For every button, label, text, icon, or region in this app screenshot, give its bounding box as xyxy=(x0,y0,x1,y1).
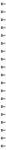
button[interactable]: Siri & Search xyxy=(0,79,6,87)
staticText: Home Screen xyxy=(3,66,4,68)
button[interactable]: Mail xyxy=(0,134,6,142)
button[interactable]: Notifications xyxy=(0,24,6,32)
staticText: Passwords xyxy=(3,129,4,131)
button[interactable]: Face ID & Passcode xyxy=(0,87,6,95)
staticText: Contacts xyxy=(3,145,4,147)
button[interactable]: Wallpaper xyxy=(0,71,6,79)
button[interactable]: Wallet & Apple Pay xyxy=(0,118,6,126)
staticText: Accessibility xyxy=(3,11,4,13)
button[interactable]: Passwords xyxy=(0,126,6,134)
button[interactable]: Home Screen xyxy=(0,63,6,71)
button[interactable]: Focus xyxy=(0,39,6,47)
button[interactable]: Sounds & Haptics xyxy=(0,32,6,39)
staticText: Focus xyxy=(3,42,4,44)
staticText: Wallpaper xyxy=(3,74,4,76)
staticText: Face ID & Passcode xyxy=(3,90,4,92)
button[interactable]: Contacts xyxy=(0,142,6,150)
button[interactable]: Screen Time xyxy=(0,47,6,55)
staticText: Battery xyxy=(3,106,4,107)
button[interactable]: Emergency SOS xyxy=(0,95,6,103)
staticText: Emergency SOS xyxy=(3,98,4,100)
button[interactable]: Privacy & Security xyxy=(0,16,6,24)
staticText: Display & Brightness xyxy=(3,58,4,60)
button[interactable]: App Store xyxy=(0,110,6,118)
staticText: Privacy & Security xyxy=(3,19,4,21)
button[interactable]: General xyxy=(0,0,6,8)
staticText: General xyxy=(3,3,4,5)
staticText: Mail xyxy=(3,137,4,139)
button[interactable]: Display & Brightness xyxy=(0,55,6,63)
button[interactable]: Battery xyxy=(0,103,6,110)
staticText: Screen Time xyxy=(3,50,4,52)
staticText: Siri & Search xyxy=(3,82,4,84)
button[interactable]: Accessibility xyxy=(0,8,6,16)
